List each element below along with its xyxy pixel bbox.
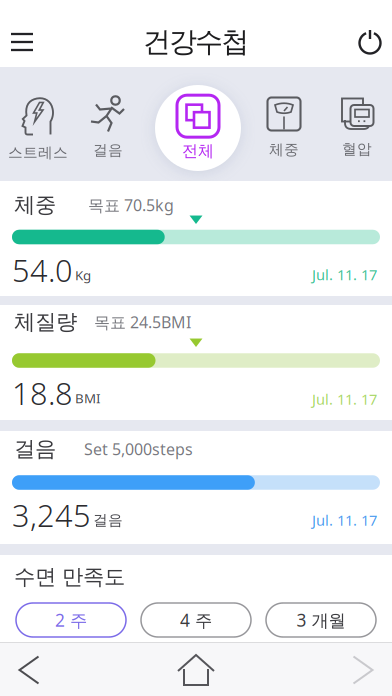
staticText: Jul. 11. 17 — [312, 510, 377, 530]
button[interactable]: 2 주 — [16, 603, 126, 637]
button[interactable]: 3 개월 — [266, 603, 376, 637]
staticText: 걸음 — [14, 436, 56, 462]
staticText: Jul. 11. 17 — [312, 265, 377, 284]
button[interactable]: 전체 — [155, 85, 241, 171]
button[interactable]: Home — [174, 648, 218, 692]
staticText: 목표 70.5kg — [88, 194, 174, 216]
staticText: 걸음 — [93, 511, 123, 529]
staticText: 건강수첩 — [143, 25, 249, 59]
button[interactable]: 체중 — [265, 95, 302, 158]
staticText: Jul. 11. 17 — [312, 389, 377, 409]
staticText: 18.8 — [12, 373, 73, 413]
staticText: 4 주 — [180, 608, 212, 631]
staticText: 목표 24.5BMI — [94, 311, 191, 333]
staticText: 3 개월 — [296, 608, 345, 631]
button[interactable]: Back — [7, 648, 51, 692]
staticText: 스트레스 — [8, 143, 68, 161]
staticText: 2 주 — [55, 608, 87, 631]
staticText: 혈압 — [342, 140, 372, 158]
staticText: 수면 만족도 — [14, 564, 125, 590]
staticText: Set 5,000steps — [84, 438, 193, 460]
staticText: 체중 — [269, 140, 299, 158]
button[interactable]: Forward — [341, 648, 385, 692]
staticText: 걸음 — [93, 141, 123, 159]
staticText: Kg — [75, 266, 91, 284]
staticText: BMI — [75, 389, 101, 407]
staticText: 3,245 — [12, 495, 91, 535]
staticText: 54.0 — [12, 250, 73, 290]
button[interactable]: 스트레스 — [8, 92, 68, 161]
button[interactable]: Power — [348, 20, 392, 64]
button[interactable]: 걸음 — [89, 95, 126, 159]
button[interactable]: Menu — [0, 20, 44, 64]
staticText: 체질량 — [14, 309, 77, 335]
button[interactable]: 4 주 — [141, 603, 251, 637]
staticText: 전체 — [182, 141, 214, 161]
button[interactable]: 혈압 — [338, 96, 375, 158]
staticText: 체중 — [14, 192, 56, 218]
